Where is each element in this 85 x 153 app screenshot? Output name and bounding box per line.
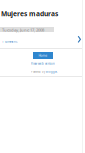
button[interactable]: 1 comment: [2, 40, 18, 44]
staticText: Tuesday, June 17, 2008 [2, 27, 44, 33]
staticText: Mujeres maduras [1, 9, 58, 18]
button[interactable]: Blogger. [46, 70, 58, 73]
button[interactable]: Home [33, 52, 53, 59]
staticText: Blogger. [46, 70, 58, 73]
button[interactable]: Newer post [77, 35, 81, 43]
staticText: View web version [31, 62, 55, 66]
staticText: 1 comment: [2, 40, 18, 44]
button[interactable]: View web version [31, 62, 55, 66]
staticText: Powered by [31, 70, 45, 73]
staticText: Home [38, 53, 47, 58]
